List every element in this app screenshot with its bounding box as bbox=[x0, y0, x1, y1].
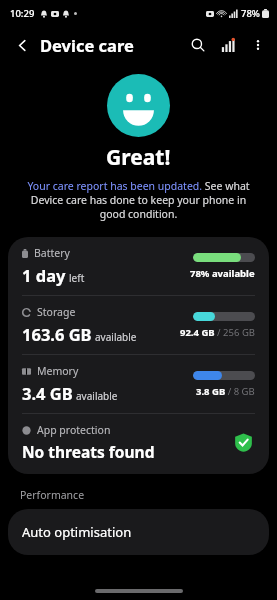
staticText: No threats found bbox=[22, 441, 155, 462]
button[interactable]: Search bbox=[183, 30, 213, 60]
staticText: 163.6 GB bbox=[22, 323, 92, 345]
staticText: 10:29 bbox=[10, 7, 35, 20]
staticText: 78% bbox=[241, 7, 260, 20]
staticText: 3.8 GB / 8 GB bbox=[196, 385, 255, 398]
staticText: Performance bbox=[20, 488, 85, 502]
button[interactable]: Usage statistics bbox=[213, 30, 243, 60]
staticText: Memory bbox=[37, 364, 79, 378]
button[interactable]: Battery bbox=[8, 237, 269, 295]
staticText: Auto optimisation bbox=[22, 523, 132, 541]
button[interactable]: Storage bbox=[8, 296, 269, 354]
staticText: 78% available bbox=[190, 267, 255, 280]
button[interactable]: App protection bbox=[8, 414, 269, 474]
staticText: Storage bbox=[37, 305, 76, 319]
staticText: available bbox=[95, 330, 137, 344]
staticText: Great! bbox=[106, 143, 171, 172]
staticText: left bbox=[69, 271, 85, 285]
staticText: 1 day bbox=[22, 264, 66, 286]
button[interactable]: More options bbox=[243, 30, 273, 60]
button[interactable]: Auto optimisation bbox=[8, 509, 269, 555]
staticText: 92.4 GB / 256 GB bbox=[180, 326, 255, 339]
staticText: Device care bbox=[40, 34, 134, 56]
staticText: 3.4 GB bbox=[22, 382, 73, 404]
button[interactable]: Memory bbox=[8, 355, 269, 413]
staticText: Battery bbox=[34, 246, 70, 260]
staticText: available bbox=[76, 389, 118, 403]
staticText: Your care report has been updated. See w… bbox=[22, 179, 255, 221]
staticText: App protection bbox=[37, 423, 111, 437]
button[interactable]: Back bbox=[6, 29, 38, 61]
